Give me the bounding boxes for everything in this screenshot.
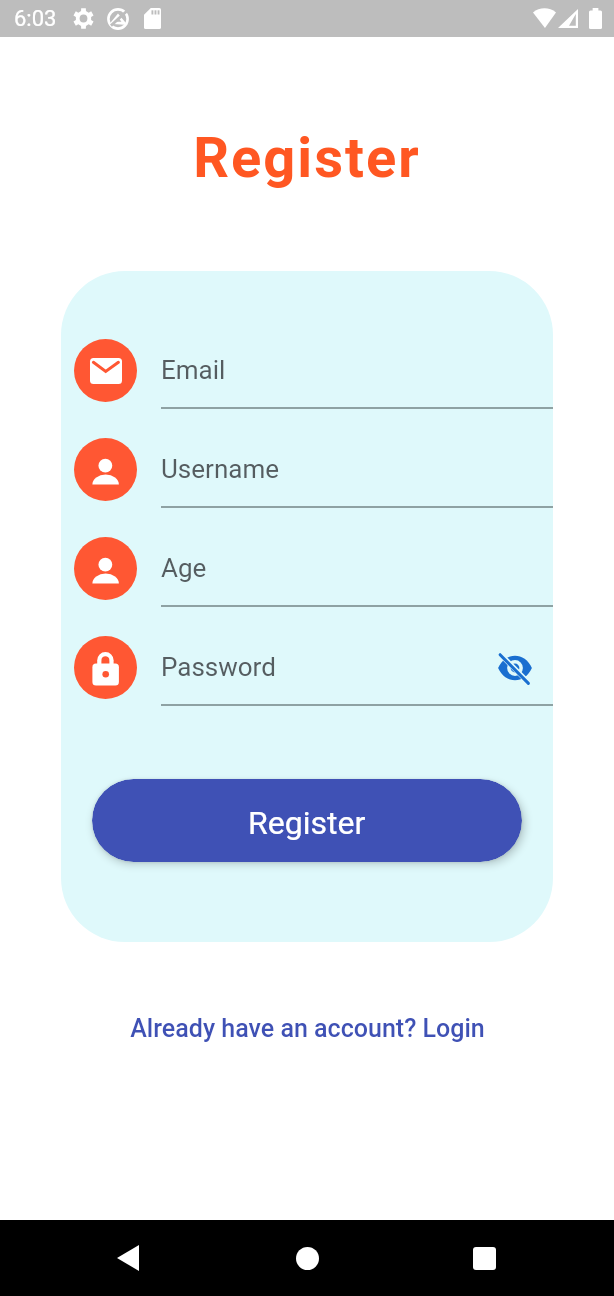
staticText: Password: [161, 652, 276, 682]
button[interactable]: Password: [161, 656, 553, 706]
button[interactable]: Email: [161, 359, 553, 409]
button[interactable]: Already have an account? Login: [120, 1008, 495, 1049]
button[interactable]: Toggle password visibility: [493, 646, 537, 690]
button[interactable]: Age: [161, 557, 553, 607]
staticText: Register: [248, 804, 366, 842]
staticText: Age: [161, 553, 207, 583]
button[interactable]: Age field icon: [74, 537, 137, 600]
button[interactable]: Register: [92, 779, 522, 862]
button[interactable]: Username field icon: [74, 438, 137, 501]
button[interactable]: Password field icon: [74, 636, 137, 699]
staticText: Register: [193, 125, 421, 191]
staticText: Username: [161, 454, 279, 484]
staticText: Email: [161, 355, 226, 385]
button[interactable]: Recent apps: [454, 1228, 514, 1288]
staticText: Already have an account? Login: [130, 1014, 485, 1043]
button[interactable]: Back: [98, 1228, 158, 1288]
button[interactable]: Username: [161, 458, 553, 508]
staticText: 6:03: [14, 6, 57, 32]
button[interactable]: Home: [277, 1228, 337, 1288]
button[interactable]: Email field icon: [74, 339, 137, 402]
